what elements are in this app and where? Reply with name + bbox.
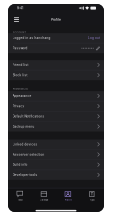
button[interactable]: Logged in as hanchang [8,33,104,43]
button[interactable]: Block list [8,70,104,80]
staticText: ACCOUNT [12,31,26,34]
button[interactable]: Privacy [8,101,104,111]
staticText: Privacy [12,104,24,108]
button[interactable]: Inbox [8,191,32,201]
staticText: Developer tools [12,173,37,177]
staticText: Calendar [39,198,48,201]
staticText: Block list [12,73,27,77]
staticText: PREFERENCES [12,87,27,90]
button[interactable]: Keyserver selection [8,150,104,159]
button[interactable]: Developer tools [8,170,104,180]
staticText: Profile [51,18,61,22]
button[interactable]: Appearance [8,91,104,101]
staticText: Profile [64,198,71,201]
button[interactable]: Profile [56,191,80,201]
staticText: Friend list [12,63,28,67]
staticText: Backup menu [12,125,34,128]
staticText: Inbox [17,198,22,201]
button[interactable]: Linked devices [8,139,104,149]
button[interactable]: Backup menu [8,122,104,131]
button[interactable]: Password [8,43,104,53]
staticText: Build info [12,163,27,166]
button[interactable]: Friend list [8,60,104,70]
button[interactable]: Build info [8,160,104,170]
staticText: Logged in as hanchang [12,36,50,40]
staticText: Appearance [12,94,31,98]
button[interactable]: Calendar [32,191,56,201]
button[interactable]: Menu [12,14,21,25]
staticText: 9:41 [17,6,23,10]
staticText: Password [12,46,27,50]
staticText: Default Notifications [12,115,44,118]
staticText: Keyserver selection [12,153,44,156]
button[interactable]: Apps [80,191,104,201]
staticText: Apps [89,198,94,201]
staticText: Log out [88,36,100,40]
button[interactable]: Default Notifications [8,111,104,121]
staticText: Linked devices [12,143,37,146]
